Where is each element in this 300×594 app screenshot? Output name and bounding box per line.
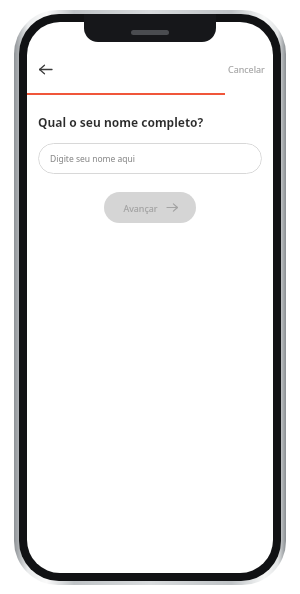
button[interactable]: Cancelar bbox=[220, 59, 273, 79]
staticText: Cancelar bbox=[228, 63, 265, 75]
button[interactable]: Digite seu nome aqui bbox=[38, 143, 262, 174]
button[interactable]: Avançar bbox=[104, 192, 196, 223]
staticText: Avançar bbox=[123, 202, 158, 214]
staticText: Qual o seu nome completo? bbox=[38, 114, 204, 130]
staticText: Digite seu nome aqui bbox=[50, 153, 136, 165]
button[interactable]: Voltar bbox=[31, 55, 59, 83]
